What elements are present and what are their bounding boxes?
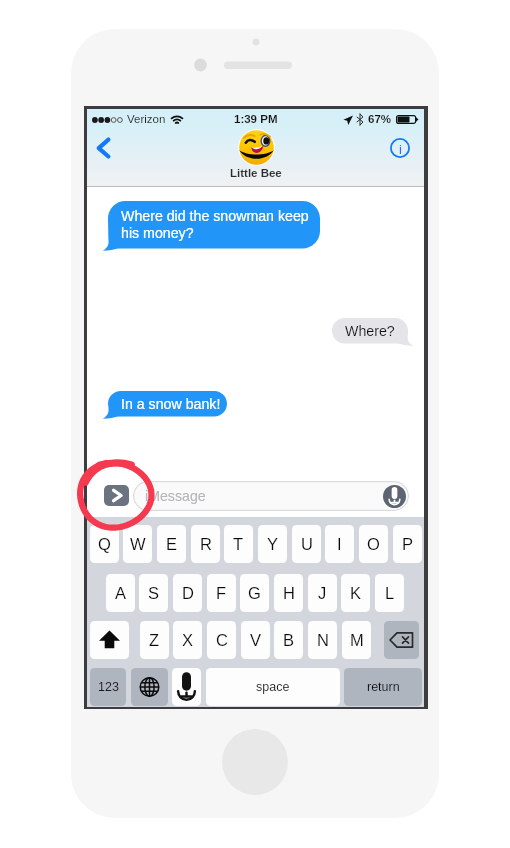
staticText: V bbox=[250, 631, 262, 649]
staticText: space bbox=[256, 680, 290, 694]
button[interactable]: M bbox=[342, 621, 371, 659]
button[interactable]: Z bbox=[140, 621, 169, 659]
button[interactable]: S bbox=[139, 574, 168, 612]
staticText: R bbox=[200, 535, 212, 553]
staticText: Where? bbox=[345, 323, 395, 339]
staticText: B bbox=[283, 631, 295, 649]
staticText: O bbox=[367, 535, 380, 553]
button[interactable]: In a snow bank! bbox=[103, 391, 227, 422]
button[interactable]: O bbox=[359, 525, 388, 563]
button[interactable]: X bbox=[173, 621, 202, 659]
button[interactable]: I bbox=[325, 525, 354, 563]
button[interactable]: Shift bbox=[90, 621, 129, 659]
staticText: E bbox=[166, 535, 178, 553]
button[interactable]: Y bbox=[258, 525, 287, 563]
button[interactable]: P bbox=[393, 525, 422, 563]
button[interactable]: iMessage bbox=[133, 481, 409, 511]
staticText: Where did the snowman keep his money? bbox=[121, 208, 309, 241]
staticText: M bbox=[350, 631, 364, 649]
button[interactable]: R bbox=[191, 525, 220, 563]
staticText: Little Bee bbox=[230, 167, 282, 180]
staticText: P bbox=[402, 535, 414, 553]
button[interactable]: J bbox=[308, 574, 337, 612]
button[interactable]: Details bbox=[390, 138, 410, 158]
staticText: G bbox=[248, 584, 261, 602]
staticText: Z bbox=[149, 631, 160, 649]
staticText: S bbox=[148, 584, 160, 602]
button[interactable]: Little Bee bbox=[211, 127, 301, 185]
button[interactable]: G bbox=[240, 574, 269, 612]
button[interactable]: A bbox=[106, 574, 135, 612]
staticText: K bbox=[350, 584, 362, 602]
staticText: I bbox=[337, 535, 342, 553]
staticText: L bbox=[385, 584, 395, 602]
button[interactable]: T bbox=[224, 525, 253, 563]
button[interactable]: K bbox=[341, 574, 370, 612]
button[interactable]: B bbox=[274, 621, 303, 659]
button[interactable]: Where? bbox=[332, 318, 413, 349]
staticText: J bbox=[318, 584, 327, 602]
staticText: X bbox=[182, 631, 194, 649]
button[interactable]: Where did the snowman keep his money? bbox=[103, 201, 320, 254]
staticText: 1:39 PM bbox=[234, 113, 278, 126]
button[interactable]: return bbox=[344, 668, 422, 706]
staticText: In a snow bank! bbox=[121, 396, 221, 412]
button[interactable]: Send bbox=[104, 485, 129, 506]
staticText: N bbox=[317, 631, 329, 649]
button[interactable]: V bbox=[241, 621, 270, 659]
staticText: H bbox=[283, 584, 295, 602]
staticText: U bbox=[301, 535, 313, 553]
staticText: F bbox=[216, 584, 227, 602]
button[interactable]: Voice message bbox=[383, 485, 406, 508]
button[interactable]: space bbox=[206, 668, 340, 706]
button[interactable]: Q bbox=[90, 525, 119, 563]
staticText: 67% bbox=[368, 113, 392, 126]
button[interactable]: W bbox=[123, 525, 152, 563]
button[interactable]: Back bbox=[90, 132, 120, 164]
button[interactable]: Switch keyboard bbox=[131, 668, 168, 706]
button[interactable]: L bbox=[375, 574, 404, 612]
staticText: i bbox=[399, 142, 402, 157]
button[interactable]: N bbox=[308, 621, 337, 659]
staticText: Verizon bbox=[127, 113, 166, 126]
staticText: A bbox=[115, 584, 127, 602]
button[interactable]: 123 bbox=[90, 668, 126, 706]
button[interactable]: E bbox=[157, 525, 186, 563]
button[interactable]: U bbox=[292, 525, 321, 563]
staticText: iMessage bbox=[145, 488, 206, 504]
button[interactable]: H bbox=[274, 574, 303, 612]
button[interactable]: F bbox=[207, 574, 236, 612]
button[interactable]: Backspace bbox=[384, 621, 419, 659]
staticText: W bbox=[130, 535, 146, 553]
button[interactable]: D bbox=[173, 574, 202, 612]
staticText: 123 bbox=[98, 680, 119, 694]
staticText: Q bbox=[98, 535, 111, 553]
staticText: Y bbox=[267, 535, 279, 553]
staticText: T bbox=[233, 535, 244, 553]
button[interactable]: Dictate bbox=[172, 668, 201, 706]
staticText: return bbox=[367, 680, 400, 694]
staticText: D bbox=[182, 584, 194, 602]
staticText: C bbox=[216, 631, 228, 649]
button[interactable]: C bbox=[207, 621, 236, 659]
